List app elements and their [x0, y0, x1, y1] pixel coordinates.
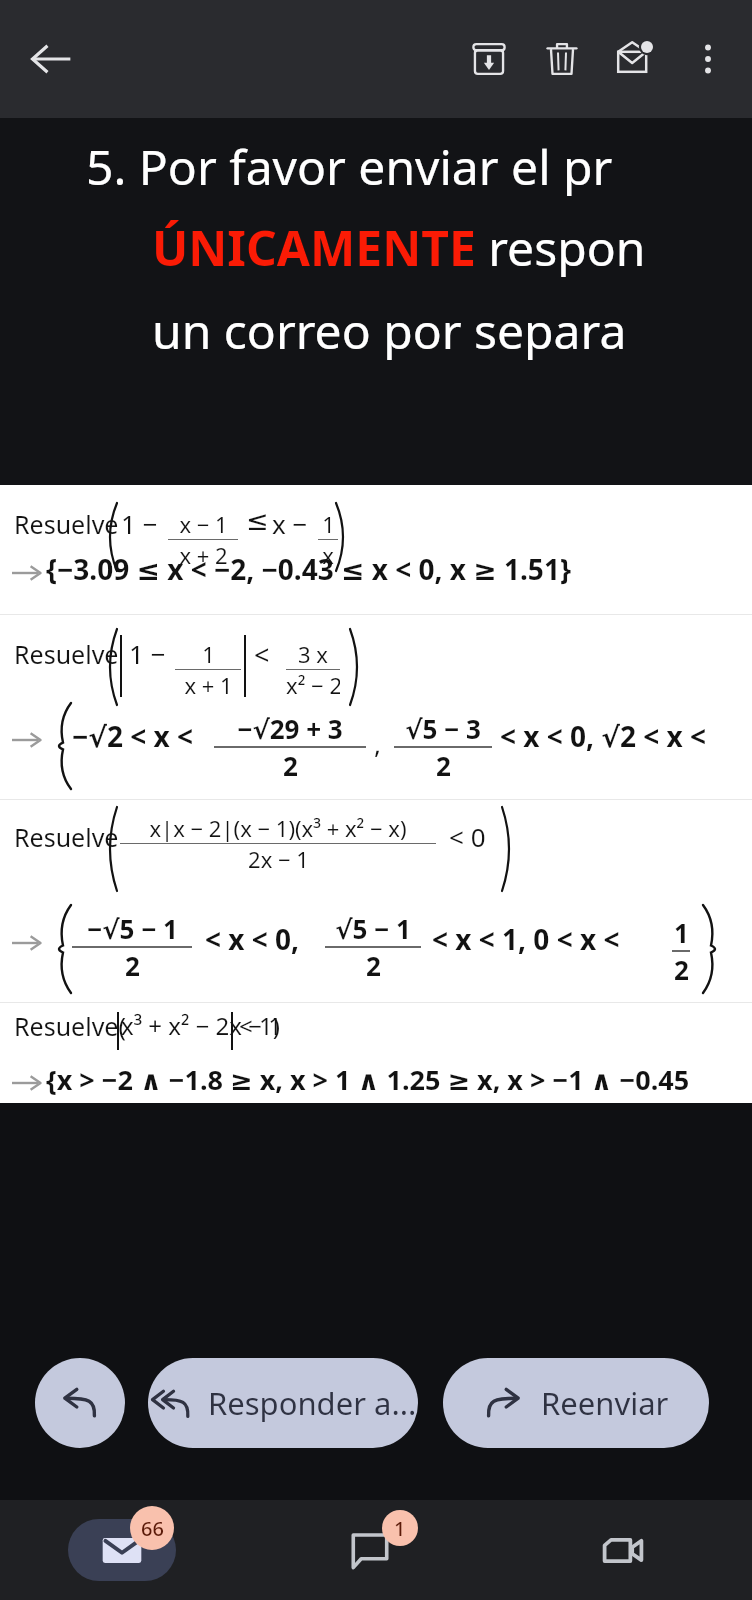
- button[interactable]: Mark as unread: [598, 20, 671, 98]
- staticText: x + 1: [184, 670, 233, 700]
- staticText: < x < 0,: [205, 920, 300, 958]
- button[interactable]: Responder a...: [148, 1358, 418, 1448]
- staticText: x³ + x² − 2x − 1: [121, 1009, 282, 1042]
- staticText: 3 x: [298, 639, 328, 669]
- staticText: 5. Por favor enviar el pr: [86, 134, 613, 199]
- button[interactable]: Archive: [452, 20, 525, 98]
- staticText: −√2 < x <: [72, 717, 194, 755]
- staticText: x − 1: [179, 509, 228, 539]
- staticText: <: [254, 636, 270, 673]
- button[interactable]: More options: [671, 20, 744, 98]
- staticText: −√5 − 1: [87, 911, 178, 946]
- staticText: 2: [436, 748, 451, 783]
- staticText: 1 −: [129, 636, 166, 671]
- button[interactable]: Chat: [250, 1500, 501, 1600]
- staticText: √5 − 1: [335, 911, 411, 946]
- staticText: < 1): [239, 1009, 280, 1042]
- staticText: 2: [283, 748, 298, 783]
- staticText: < x < 1, 0 < x <: [432, 920, 620, 958]
- staticText: x² − 2: [286, 670, 340, 700]
- staticText: 2x − 1: [248, 844, 309, 874]
- staticText: 2: [366, 948, 381, 983]
- staticText: Resuelve: [14, 820, 119, 854]
- staticText: < x < 0, √2 < x <: [500, 717, 707, 755]
- staticText: 1: [394, 1515, 406, 1542]
- staticText: 1: [322, 509, 335, 539]
- button[interactable]: Back: [12, 20, 90, 98]
- staticText: 2: [674, 952, 689, 987]
- staticText: 1 −: [121, 506, 158, 541]
- button[interactable]: Reenviar: [443, 1358, 709, 1448]
- staticText: {x > −2 ∧ −1.8 ≥ x, x > 1 ∧ 1.25 ≥ x, x …: [46, 1061, 690, 1098]
- staticText: x + 2: [179, 540, 228, 570]
- staticText: Resuelve(: [14, 1009, 126, 1043]
- staticText: ,: [374, 726, 381, 761]
- button[interactable]: Reply: [35, 1358, 125, 1448]
- staticText: x −: [272, 506, 308, 541]
- staticText: Resuelve: [14, 637, 119, 671]
- button[interactable]: Delete: [525, 20, 598, 98]
- staticText: −√29 + 3: [237, 711, 343, 746]
- staticText: 1: [674, 915, 689, 950]
- staticText: 1: [202, 639, 215, 669]
- button[interactable]: Meet: [501, 1500, 752, 1600]
- staticText: Responder a...: [208, 1382, 417, 1424]
- staticText: 66: [141, 1515, 164, 1542]
- button[interactable]: Mail: [0, 1500, 250, 1600]
- staticText: Reenviar: [541, 1382, 669, 1424]
- staticText: √5 − 3: [405, 711, 481, 746]
- staticText: {−3.09 ≤ x < −2, −0.43 ≤ x < 0, x ≥ 1.51…: [46, 550, 571, 588]
- staticText: un correo por separa: [152, 298, 627, 363]
- staticText: ÚNICAMENTE respon: [152, 215, 646, 280]
- staticText: < 0: [449, 819, 486, 854]
- staticText: ≤: [246, 505, 269, 536]
- staticText: x|x − 2|(x − 1)(x³ + x² − x): [149, 813, 407, 843]
- staticText: 2: [125, 948, 140, 983]
- staticText: Resuelve: [14, 507, 119, 541]
- staticText: x: [322, 540, 334, 570]
